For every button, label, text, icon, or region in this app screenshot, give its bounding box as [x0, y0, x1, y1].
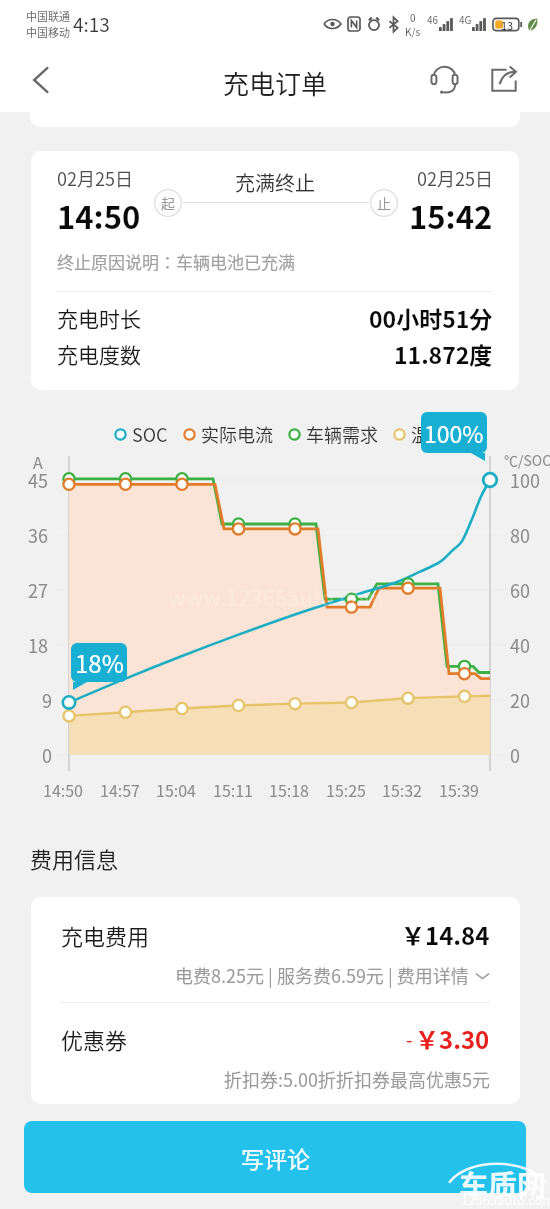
staticText: 14:57 — [100, 778, 140, 801]
staticText: 80 — [510, 522, 530, 548]
staticText: 9 — [42, 687, 52, 713]
staticText: 电费8.25元 | 服务费6.59元 | 费用详情 — [175, 962, 469, 988]
staticText: 15:42 — [409, 193, 493, 238]
button[interactable]: 电费8.25元 | 服务费6.59元 | 费用详情 — [61, 962, 490, 988]
staticText: SOC — [132, 421, 168, 447]
staticText: 0 — [410, 10, 416, 24]
staticText: 40 — [510, 632, 530, 658]
staticText: 12365auto.com — [461, 1190, 550, 1209]
staticText: 27 — [28, 577, 48, 603]
button[interactable]: Share — [481, 56, 527, 102]
staticText: 15:39 — [439, 778, 479, 801]
staticText: ℃/SOC — [504, 450, 550, 470]
staticText: 优惠券 — [61, 1023, 128, 1055]
staticText: 0 — [42, 742, 52, 768]
staticText: A — [33, 450, 43, 473]
staticText: 终止原因说明：车辆电池已充满 — [57, 249, 295, 274]
staticText: 13 — [501, 17, 514, 33]
staticText: 18 — [28, 632, 48, 658]
staticText: 中国移动 — [26, 24, 70, 40]
staticText: 4G — [459, 12, 472, 26]
button[interactable]: 写评论 — [24, 1121, 526, 1193]
staticText: 18% — [75, 645, 124, 680]
staticText: 费用信息 — [30, 842, 119, 874]
staticText: 0 — [510, 742, 520, 768]
staticText: 4:13 — [73, 10, 110, 38]
staticText: 02月25日 — [57, 165, 133, 191]
staticText: ￥14.84 — [401, 917, 490, 952]
staticText: 充电费用 — [61, 919, 150, 951]
staticText: www.12365auto.com — [168, 580, 385, 612]
staticText: - — [406, 1025, 413, 1053]
staticText: 15:11 — [213, 778, 253, 801]
staticText: 15:32 — [382, 778, 422, 801]
staticText: 45 — [28, 467, 48, 493]
staticText: 15:25 — [326, 778, 366, 801]
staticText: 100% — [424, 416, 484, 449]
staticText: K/s — [405, 24, 421, 38]
staticText: 充电度数 — [57, 339, 141, 369]
staticText: 充满终止 — [235, 168, 315, 197]
staticText: 止 — [377, 193, 391, 213]
staticText: 20 — [510, 687, 530, 713]
staticText: 15:18 — [269, 778, 309, 801]
staticText: 60 — [510, 577, 530, 603]
staticText: 15:04 — [156, 778, 196, 801]
staticText: 14:50 — [43, 778, 83, 801]
staticText: 36 — [28, 522, 48, 548]
staticText: 温度 — [411, 421, 447, 447]
staticText: 14:50 — [57, 193, 141, 238]
staticText: 02月25日 — [417, 165, 493, 191]
staticText: 折扣券:5.00折折扣券最高优惠5元 — [224, 1066, 490, 1092]
staticText: 起 — [161, 193, 175, 213]
staticText: 11.872度 — [394, 337, 493, 370]
staticText: 实际电流 — [201, 421, 273, 447]
button[interactable]: Customer service — [421, 56, 467, 102]
staticText: 中国联通 — [26, 8, 70, 24]
button[interactable]: Back — [18, 56, 66, 104]
staticText: 100 — [510, 467, 540, 493]
staticText: 写评论 — [241, 1141, 310, 1174]
staticText: 车辆需求 — [306, 421, 378, 447]
staticText: ￥3.30 — [415, 1021, 490, 1056]
staticText: 00小时51分 — [369, 301, 493, 334]
staticText: 车质网 — [459, 1163, 547, 1205]
staticText: 充电时长 — [57, 303, 141, 333]
staticText: 46 — [427, 12, 439, 26]
staticText: 充电订单 — [223, 64, 328, 102]
